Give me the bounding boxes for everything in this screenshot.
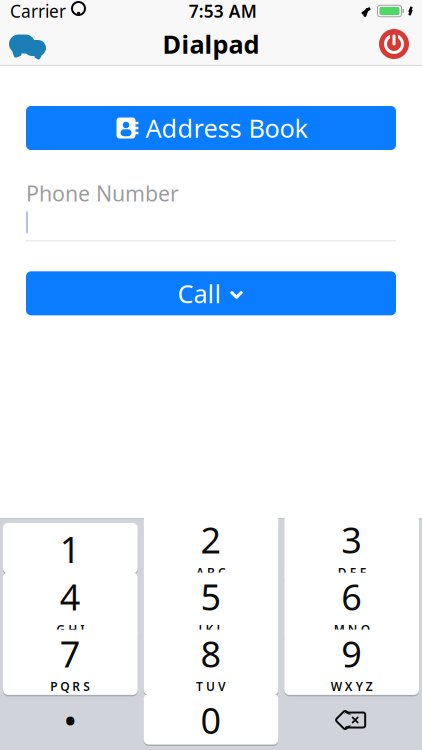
staticText: Carrier xyxy=(10,0,66,22)
button[interactable]: 9 xyxy=(284,637,419,689)
button[interactable]: 6 xyxy=(284,580,419,632)
staticText: 4 xyxy=(60,573,81,620)
button[interactable]: Period xyxy=(3,694,138,746)
button[interactable]: Messages xyxy=(0,22,56,66)
button[interactable]: 1 xyxy=(3,523,138,575)
staticText: 9 xyxy=(341,630,362,677)
staticText: T U V xyxy=(196,678,226,694)
staticText: P Q R S xyxy=(50,678,90,694)
staticText: 0 xyxy=(200,696,221,744)
staticText: Phone Number xyxy=(26,179,179,207)
staticText: • xyxy=(65,700,76,739)
staticText: Address Book xyxy=(145,111,308,145)
staticText: Dialpad xyxy=(162,27,259,61)
staticText: M N O xyxy=(334,621,370,637)
button[interactable]: Address Book xyxy=(26,106,396,150)
staticText: 3 xyxy=(341,516,362,563)
button[interactable]: 4 xyxy=(3,580,138,632)
staticText: 7 xyxy=(60,630,81,677)
button[interactable]: 0 xyxy=(144,694,278,746)
staticText: D E F xyxy=(338,564,366,580)
staticText: 7:53 AM xyxy=(189,0,257,22)
button[interactable]: 2 xyxy=(144,523,278,575)
button[interactable]: 5 xyxy=(144,580,278,632)
button[interactable]: Log out xyxy=(366,22,422,66)
button[interactable]: 8 xyxy=(144,637,278,689)
staticText: 1 xyxy=(60,525,81,573)
button[interactable]: Call xyxy=(26,271,396,315)
staticText: J K L xyxy=(198,621,223,637)
staticText: 2 xyxy=(200,516,221,563)
staticText: 6 xyxy=(341,573,362,620)
staticText: W X Y Z xyxy=(331,678,373,694)
button[interactable]: Delete xyxy=(284,694,419,746)
button[interactable]: 7 xyxy=(3,637,138,689)
staticText: Call xyxy=(177,276,221,310)
staticText: 8 xyxy=(200,630,221,677)
staticText: A B C xyxy=(196,564,226,580)
staticText: G H I xyxy=(56,621,84,637)
button[interactable]: 3 xyxy=(284,523,419,575)
staticText: 5 xyxy=(200,573,221,620)
